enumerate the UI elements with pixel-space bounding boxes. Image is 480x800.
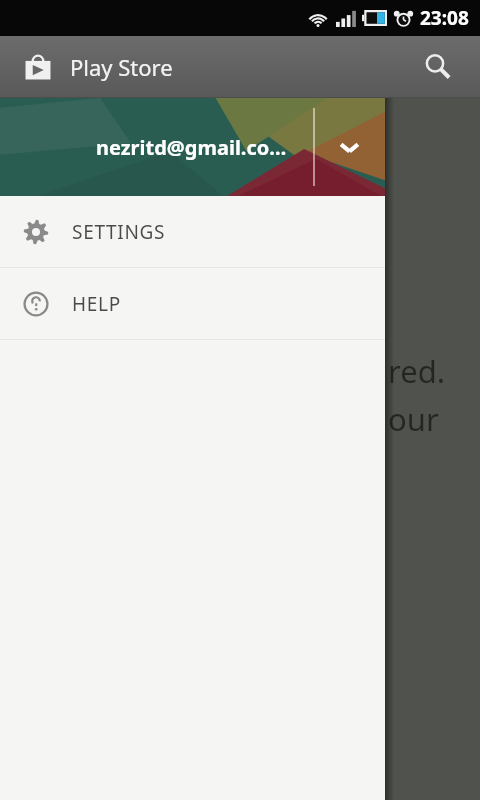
button[interactable]: Play Store bbox=[18, 47, 58, 87]
staticText: Play Store bbox=[70, 52, 173, 82]
button[interactable]: Switch account bbox=[328, 98, 370, 196]
staticText: our bbox=[388, 398, 439, 440]
button[interactable]: Search bbox=[416, 45, 460, 89]
staticText: HELP bbox=[72, 291, 121, 317]
staticText: SETTINGS bbox=[72, 219, 166, 245]
staticText: nezritd@gmail.co… bbox=[96, 134, 287, 161]
button[interactable]: SETTINGS bbox=[0, 196, 385, 267]
button[interactable]: nezritd@gmail.co… bbox=[0, 98, 385, 196]
staticText: red. bbox=[388, 350, 446, 392]
button[interactable]: HELP bbox=[0, 268, 385, 339]
staticText: 23:08 bbox=[420, 5, 469, 31]
